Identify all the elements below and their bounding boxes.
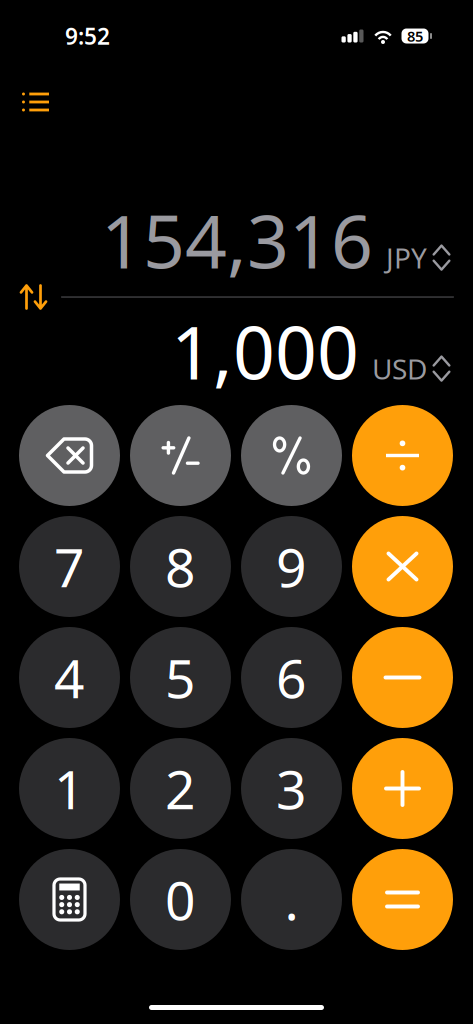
staticText: 9 [276, 531, 307, 602]
button[interactable]: Minus [352, 627, 453, 728]
button[interactable]: . [241, 849, 342, 950]
button[interactable]: Delete [19, 405, 120, 506]
staticText: 7 [54, 531, 85, 602]
button[interactable]: 9 [241, 516, 342, 617]
button[interactable]: 5 [130, 627, 231, 728]
button[interactable]: 0 [130, 849, 231, 950]
staticText: USD [372, 350, 427, 387]
staticText: 1,000 [171, 302, 359, 400]
button[interactable]: Multiply [352, 516, 453, 617]
button[interactable]: Currency list [10, 80, 61, 124]
button[interactable]: 1 [19, 738, 120, 839]
button[interactable]: 3 [241, 738, 342, 839]
button[interactable]: USD [372, 350, 450, 387]
button[interactable]: 7 [19, 516, 120, 617]
button[interactable]: 4 [19, 627, 120, 728]
button[interactable]: Plus minus [130, 405, 231, 506]
staticText: 8 [165, 531, 196, 602]
button[interactable]: Swap currencies [21, 285, 46, 308]
staticText: 1 [54, 753, 85, 824]
staticText: 9:52 [65, 21, 110, 51]
button[interactable]: 2 [130, 738, 231, 839]
button[interactable]: JPY [386, 239, 450, 276]
staticText: 85 [407, 26, 423, 46]
staticText: JPY [386, 239, 427, 276]
staticText: 6 [276, 642, 307, 713]
staticText: 2 [165, 753, 196, 824]
staticText: . [284, 864, 298, 935]
button[interactable]: Divide [352, 405, 453, 506]
button[interactable]: Plus [352, 738, 453, 839]
button[interactable]: 8 [130, 516, 231, 617]
button[interactable]: Equals [352, 849, 453, 950]
staticText: 154,316 [101, 191, 373, 289]
staticText: 3 [276, 753, 307, 824]
staticText: 5 [165, 642, 196, 713]
button[interactable]: Percent [241, 405, 342, 506]
button[interactable]: 6 [241, 627, 342, 728]
button[interactable]: Calculator [19, 849, 120, 950]
staticText: 0 [165, 864, 196, 935]
staticText: 4 [54, 642, 85, 713]
